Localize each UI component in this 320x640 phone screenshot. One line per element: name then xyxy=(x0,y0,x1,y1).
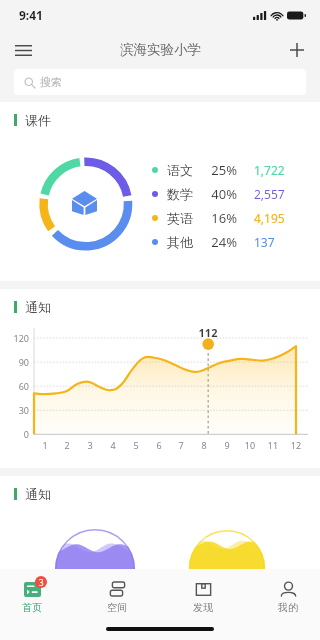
staticText: 英语 xyxy=(167,210,202,226)
staticText: 30 xyxy=(2,404,29,416)
staticText: 9:41 xyxy=(19,7,43,23)
button[interactable]: 空间 xyxy=(97,571,137,623)
staticText: 3 xyxy=(39,577,44,588)
button[interactable]: 我的 xyxy=(268,571,308,623)
staticText: 数学 xyxy=(167,186,202,202)
staticText: 语文 xyxy=(167,162,202,178)
button[interactable]: 数学 xyxy=(152,182,285,206)
staticText: 3 xyxy=(79,439,101,451)
staticText: 60 xyxy=(2,380,29,392)
button[interactable]: 发现 xyxy=(183,571,223,623)
staticText: 我的 xyxy=(278,601,298,614)
staticText: 4 xyxy=(102,439,124,451)
staticText: 课件 xyxy=(25,112,51,128)
staticText: 7 xyxy=(170,439,192,451)
staticText: 16% xyxy=(202,209,237,227)
staticText: 11 xyxy=(262,439,284,451)
staticText: 2,557 xyxy=(254,186,285,202)
button[interactable]: 其他 xyxy=(152,230,275,254)
staticText: 4,195 xyxy=(254,210,285,226)
staticText: 8 xyxy=(193,439,215,451)
button[interactable] xyxy=(189,530,265,606)
staticText: 1 xyxy=(34,439,56,451)
staticText: 90 xyxy=(2,356,29,368)
staticText: 2 xyxy=(56,439,78,451)
button[interactable]: 搜索 xyxy=(14,69,306,95)
staticText: 首页 xyxy=(22,601,42,614)
staticText: 通知 xyxy=(25,299,51,315)
staticText: 搜索 xyxy=(40,75,62,89)
staticText: 12 xyxy=(285,439,307,451)
staticText: 滨海实验小学 xyxy=(120,41,201,58)
button[interactable]: Menu xyxy=(6,33,40,67)
staticText: 24% xyxy=(202,233,237,251)
staticText: 发现 xyxy=(193,601,213,614)
staticText: 112 xyxy=(194,325,222,340)
button[interactable]: 3 xyxy=(12,571,52,623)
staticText: 120 xyxy=(2,332,29,344)
staticText: 通知 xyxy=(25,486,51,502)
button[interactable] xyxy=(55,529,135,609)
staticText: 6 xyxy=(148,439,170,451)
staticText: 0 xyxy=(2,428,29,440)
staticText: 137 xyxy=(254,234,275,250)
staticText: 1,722 xyxy=(254,162,285,178)
staticText: 9 xyxy=(216,439,238,451)
button[interactable]: Add xyxy=(280,33,314,67)
staticText: 45% xyxy=(81,585,110,604)
staticText: 10 xyxy=(239,439,261,451)
staticText: 40% xyxy=(202,185,237,203)
staticText: 5 xyxy=(125,439,147,451)
staticText: 其他 xyxy=(167,234,202,250)
staticText: 25% xyxy=(202,161,237,179)
button[interactable]: 语文 xyxy=(152,158,285,182)
staticText: 空间 xyxy=(107,601,127,614)
button[interactable]: 英语 xyxy=(152,206,285,230)
